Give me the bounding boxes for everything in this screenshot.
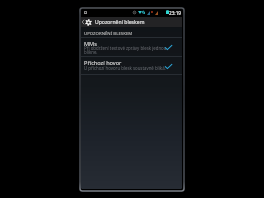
button[interactable]: Příchozí hovor [81,57,182,74]
staticText: Při obdržení textové zprávy blesk jednou… [84,45,168,55]
button[interactable]: MMs [81,37,182,56]
staticText: UPOZORNĚNÍ BLESKEM [84,30,133,36]
other: Back [82,20,84,24]
staticText: Příchozí hovor [84,59,122,67]
other: Enabled [165,45,172,50]
staticText: U příchozí hovoru blesk soustavně bliká. [84,65,168,71]
other: Enabled [165,64,172,69]
staticText: Upozornění bleskem [95,19,145,26]
button[interactable]: Back [81,17,182,27]
staticText: MMs [84,40,97,48]
staticText: 23:19 [169,10,182,16]
